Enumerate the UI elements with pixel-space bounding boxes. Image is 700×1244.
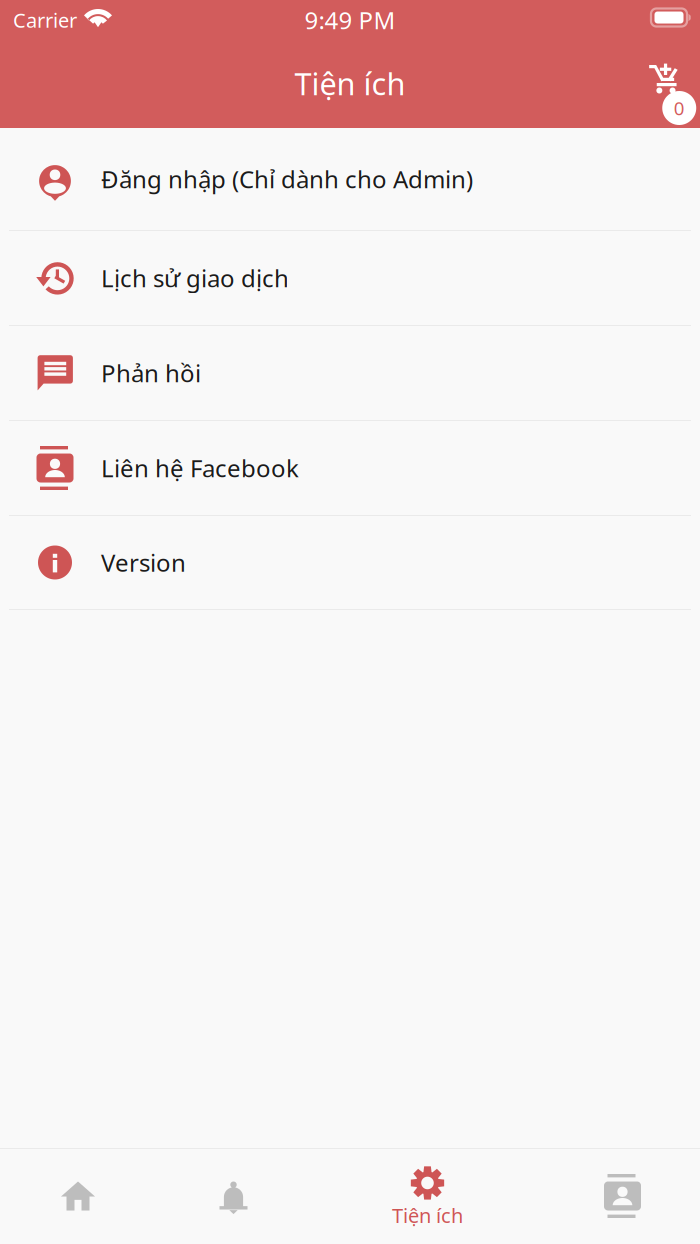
staticText: Phản hồi [101,357,201,389]
staticText: Tiện ích [392,1202,463,1229]
button[interactable]: Thông báo [156,1148,330,1244]
staticText: Đăng nhập (Chỉ dành cho Admin) [101,163,473,195]
staticText: 9:49 PM [304,4,395,36]
staticText: Liên hệ Facebook [101,452,299,484]
button[interactable]: Liên hệ Facebook [0,421,700,516]
button[interactable]: Đăng nhập (Chỉ dành cho Admin) [0,128,700,231]
staticText: Tiện ích [294,63,405,104]
button[interactable]: Tiện ích [330,1148,525,1244]
button[interactable]: Trang chủ [0,1148,156,1244]
button[interactable]: Giỏ hàng [637,47,696,128]
staticText: 0 [674,96,685,120]
button[interactable]: Lịch sử giao dịch [0,231,700,326]
button[interactable]: Phản hồi [0,326,700,421]
button[interactable]: Version [0,516,700,610]
staticText: Version [101,547,186,578]
staticText: Lịch sử giao dịch [101,262,289,294]
staticText: Carrier [13,7,77,33]
button[interactable]: Danh bạ [525,1148,700,1244]
